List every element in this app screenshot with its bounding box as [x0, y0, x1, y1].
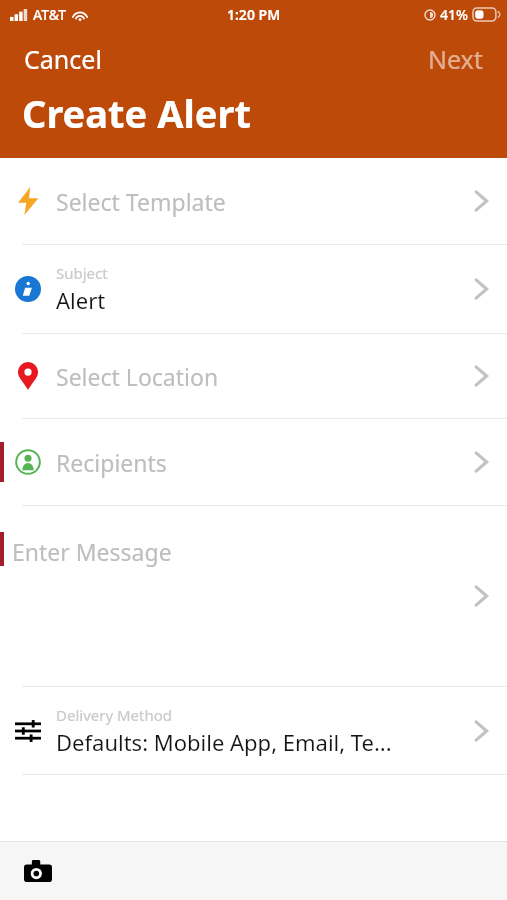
staticText: Enter Message [12, 536, 172, 567]
button[interactable]: Select Template [0, 158, 507, 244]
staticText: Alert [56, 285, 106, 315]
button[interactable]: Select Location [0, 334, 507, 418]
staticText: 41% [440, 5, 468, 24]
button[interactable]: Cancel [20, 38, 106, 80]
staticText: Cancel [24, 42, 102, 76]
button[interactable]: Delivery Method [0, 687, 507, 774]
button[interactable]: Enter Message [0, 506, 507, 686]
staticText: Delivery Method [56, 705, 173, 725]
staticText: Subject [56, 263, 108, 283]
staticText: 1:20 PM [227, 5, 281, 24]
button[interactable]: Camera [16, 849, 60, 893]
button[interactable]: Next [424, 38, 487, 80]
staticText: Select Location [56, 361, 455, 392]
staticText: Next [428, 42, 483, 76]
button[interactable]: Subject [0, 245, 507, 333]
staticText: Create Alert [22, 87, 251, 139]
staticText: AT&T [33, 5, 67, 24]
staticText: Defaults: Mobile App, Email, Te... [56, 727, 392, 757]
staticText: Recipients [56, 447, 455, 478]
staticText: Select Template [56, 186, 455, 217]
button[interactable]: Recipients [0, 419, 507, 505]
